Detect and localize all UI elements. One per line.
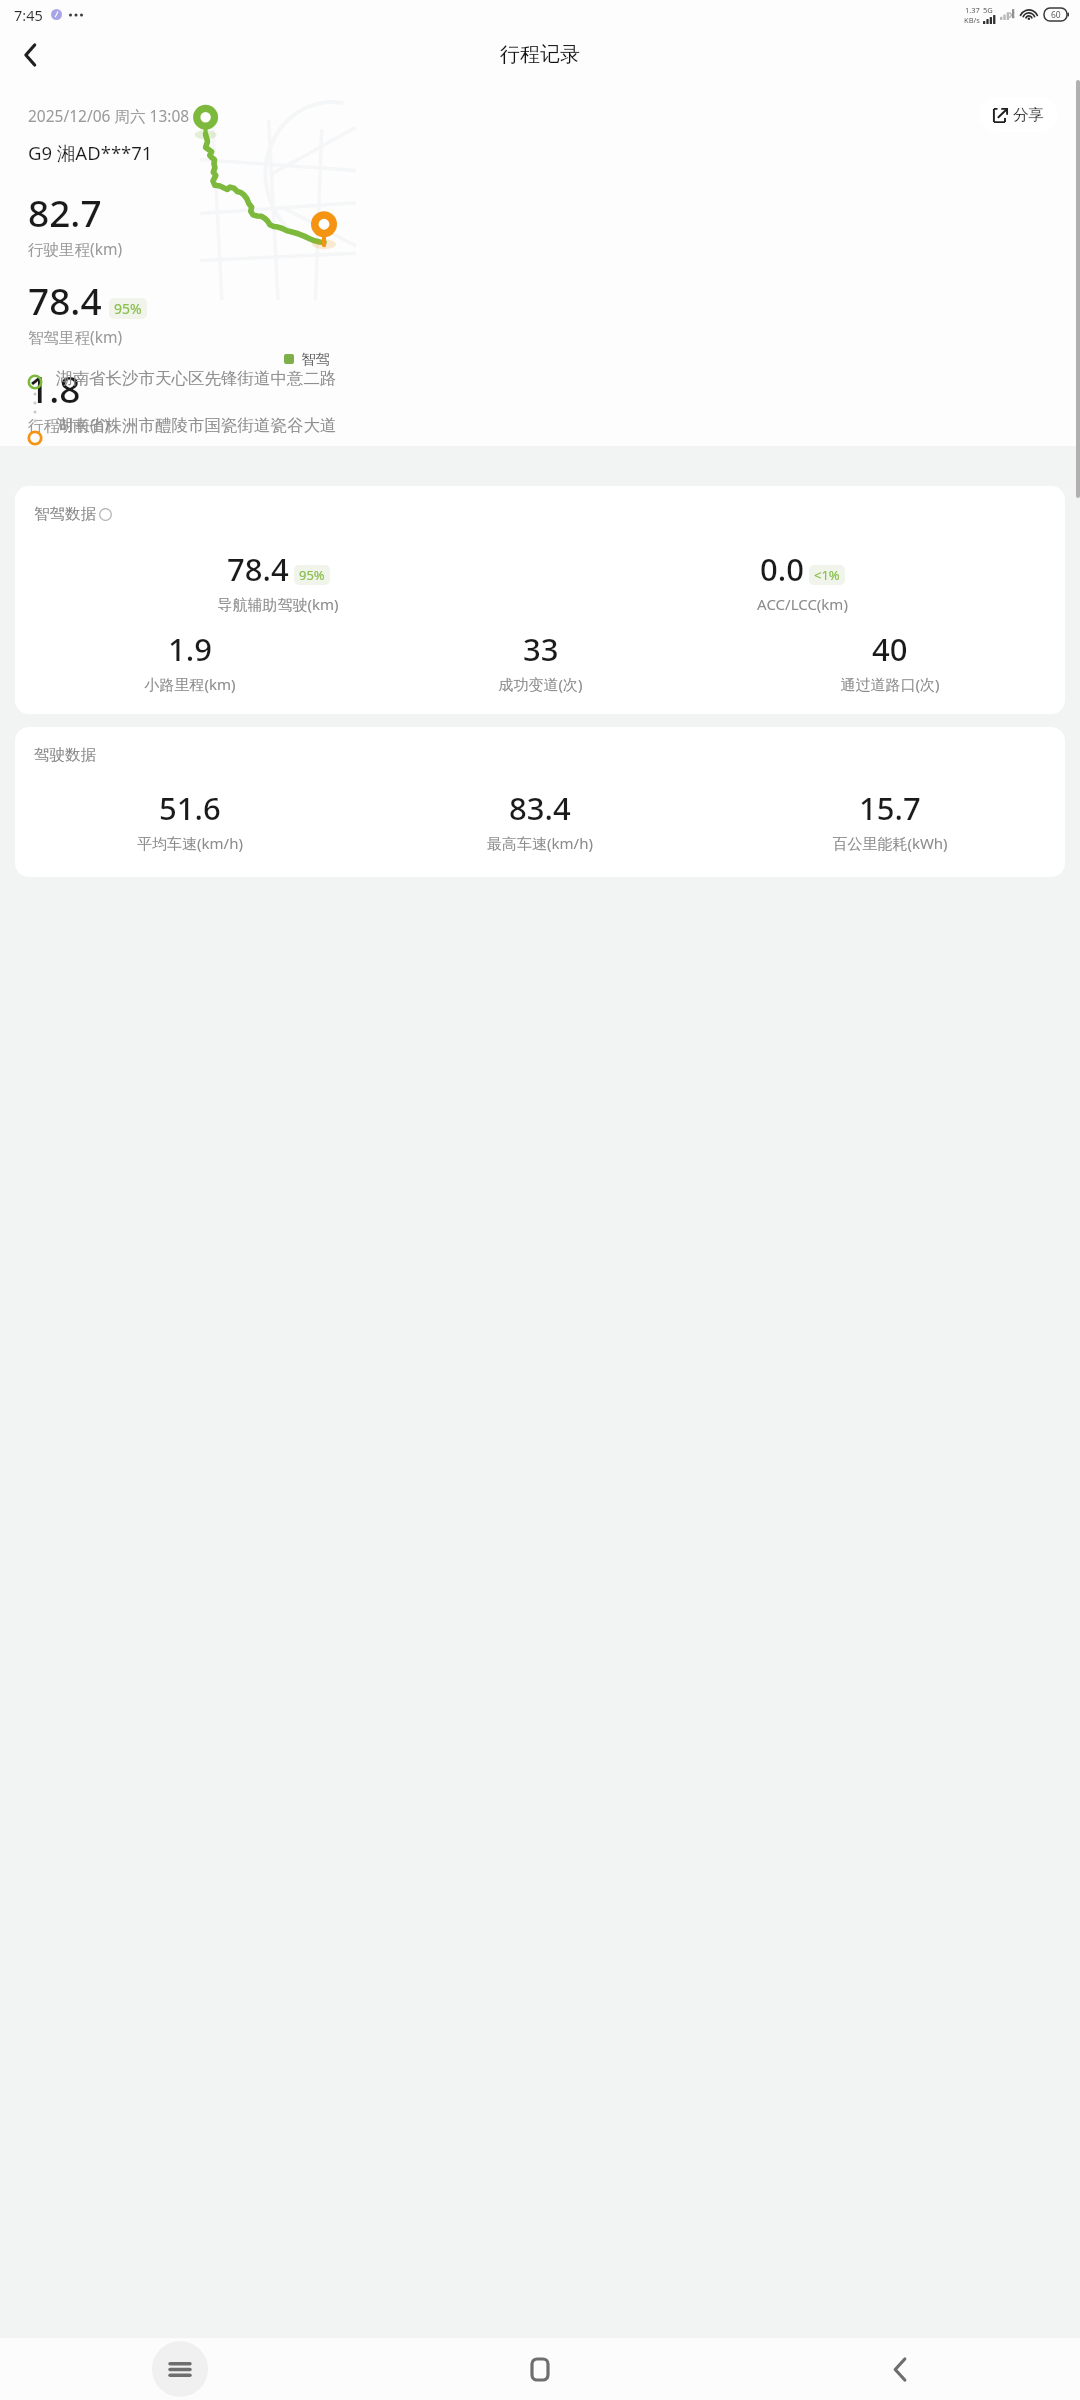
staticText: ACC/LCC(km) xyxy=(757,594,848,614)
staticText: 33 xyxy=(523,628,559,670)
button[interactable]: Recent apps xyxy=(152,2341,208,2397)
staticText: 行驶里程(km) xyxy=(28,238,123,259)
staticText: 7:45 xyxy=(14,5,43,25)
button[interactable]: Back xyxy=(8,33,52,77)
staticText: 5G xyxy=(983,5,993,15)
staticText: 智驾数据 xyxy=(34,504,96,524)
staticText: 平均车速(km/h) xyxy=(137,833,243,853)
staticText: 51.6 xyxy=(159,787,221,829)
button[interactable]: 分享 xyxy=(979,98,1058,132)
button[interactable]: Home xyxy=(512,2341,568,2397)
button[interactable]: 驾驶数据 xyxy=(15,727,1065,877)
staticText: 1.8 xyxy=(28,363,81,413)
staticText: 小路里程(km) xyxy=(144,674,236,694)
staticText: 行程记录 xyxy=(500,42,580,67)
staticText: 通过道路口(次) xyxy=(840,674,940,694)
staticText: <1% xyxy=(814,566,840,584)
staticText: 智驾 xyxy=(301,350,330,368)
staticText: 湖南省株洲市醴陵市国瓷街道瓷谷大道 xyxy=(56,415,337,436)
button[interactable]: Back xyxy=(872,2341,928,2397)
staticText: 湖南省长沙市天心区先锋街道中意二路 xyxy=(56,368,337,389)
staticText: 95% xyxy=(114,299,142,318)
staticText: 导航辅助驾驶(km) xyxy=(217,594,339,614)
button[interactable]: 智驾数据 xyxy=(15,486,1065,714)
staticText: 1.9 xyxy=(168,628,212,670)
staticText: 60 xyxy=(1051,9,1061,21)
staticText: KB/s xyxy=(964,15,980,25)
staticText: 最高车速(km/h) xyxy=(487,833,593,853)
staticText: 成功变道(次) xyxy=(498,674,583,694)
staticText: 百公里能耗(kWh) xyxy=(832,833,948,853)
staticText: 2025/12/06 周六 13:08 xyxy=(28,105,190,126)
staticText: 95% xyxy=(299,566,325,584)
staticText: G9 湘AD***71 xyxy=(28,140,153,165)
staticText: 分享 xyxy=(1013,105,1044,125)
staticText: 智驾里程(km) xyxy=(28,326,123,347)
staticText: 83.4 xyxy=(509,787,571,829)
staticText: 15.7 xyxy=(859,787,921,829)
staticText: 0.0 xyxy=(760,548,804,590)
staticText: 1.37 xyxy=(965,5,980,15)
staticText: 行程时长(h) xyxy=(28,414,109,435)
staticText: 40 xyxy=(872,628,908,670)
staticText: 78.4 xyxy=(227,548,289,590)
staticText: 82.7 xyxy=(28,187,102,237)
staticText: 驾驶数据 xyxy=(34,745,96,765)
staticText: 78.4 xyxy=(28,275,102,325)
